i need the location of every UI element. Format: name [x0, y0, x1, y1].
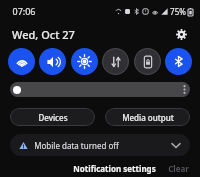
staticText: Wed, Oct 27 — [12, 27, 75, 42]
staticText: Clear — [168, 163, 189, 174]
button[interactable]: Brightness — [10, 82, 190, 97]
button[interactable]: Notification settings — [70, 162, 159, 175]
staticText: Mobile data turned off — [34, 140, 119, 151]
button[interactable]: Wi-Fi — [8, 48, 35, 75]
button[interactable]: Media output — [105, 108, 190, 126]
button[interactable]: Clear — [165, 162, 192, 175]
button[interactable]: Sound — [39, 48, 66, 75]
button[interactable]: Auto brightness — [71, 48, 98, 75]
button[interactable]: Mobile data turned off — [10, 134, 190, 156]
button[interactable]: Devices — [10, 108, 95, 126]
staticText: Devices — [38, 112, 68, 123]
button[interactable]: Settings — [171, 24, 191, 44]
button[interactable]: Auto rotate lock — [134, 48, 161, 75]
staticText: Media output — [122, 112, 174, 123]
button[interactable]: Mobile data — [102, 48, 129, 75]
staticText: Notification settings — [73, 163, 156, 174]
staticText: 75% — [170, 6, 186, 17]
other: Expand — [172, 143, 180, 148]
button[interactable]: Bluetooth — [165, 48, 192, 75]
staticText: 07:06 — [12, 5, 36, 17]
